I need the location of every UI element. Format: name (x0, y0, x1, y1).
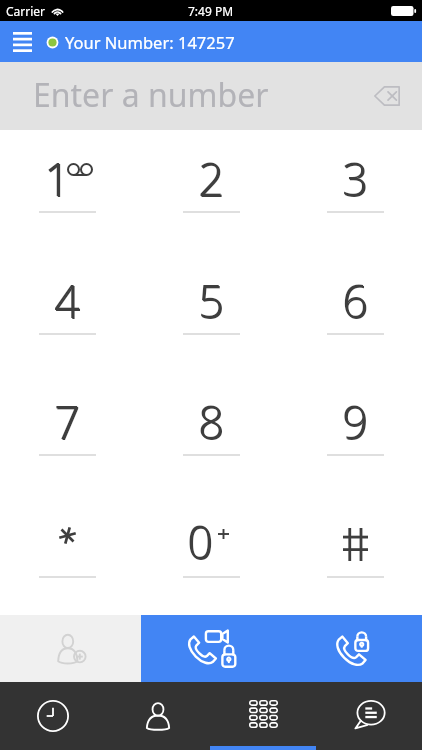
staticText: 6 (342, 270, 368, 331)
staticText: 5 (199, 271, 225, 332)
staticText: 7 (55, 392, 81, 453)
staticText: 8 (199, 392, 225, 453)
staticText: 8 (198, 391, 224, 452)
button[interactable]: 4 (7, 263, 127, 363)
staticText: Your Number: 147257 (65, 31, 235, 53)
staticText: 9 (343, 392, 369, 453)
button[interactable]: 3 (295, 141, 415, 241)
button[interactable] (7, 506, 127, 606)
button[interactable]: 9 (295, 384, 415, 484)
button[interactable]: 6 (295, 263, 415, 363)
button[interactable]: 8 (151, 384, 271, 484)
button[interactable]: Secure video call (141, 615, 281, 682)
button[interactable] (295, 506, 415, 606)
button[interactable]: Add contact (0, 615, 141, 682)
staticText: 6 (343, 271, 369, 332)
button[interactable]: Recent calls (0, 682, 105, 750)
button[interactable]: 5 (151, 263, 271, 363)
staticText: 2 (198, 148, 224, 209)
staticText: 7 (54, 391, 80, 452)
staticText: 9 (342, 391, 368, 452)
button[interactable]: Open navigation menu (4, 24, 40, 60)
button[interactable]: Messages (316, 682, 422, 750)
staticText: 0 (188, 512, 214, 573)
button[interactable]: Backspace (365, 74, 409, 118)
button[interactable]: Contacts (105, 682, 210, 750)
staticText: 5 (198, 270, 224, 331)
staticText: 0 (187, 511, 213, 572)
button[interactable]: Keypad (210, 682, 316, 750)
staticText: 3 (342, 148, 368, 209)
staticText: 3 (343, 149, 369, 210)
staticText: 4 (55, 271, 81, 332)
button[interactable]: 7 (7, 384, 127, 484)
button[interactable]: Secure call (281, 615, 422, 682)
button[interactable]: 2 (151, 141, 271, 241)
button[interactable]: 1 (7, 141, 127, 241)
staticText: 1 (44, 148, 70, 209)
staticText: 2 (199, 149, 225, 210)
staticText: 4 (54, 270, 80, 331)
staticText: Enter a number (33, 73, 269, 117)
staticText: 7:49 PM (188, 3, 234, 19)
button[interactable]: 0 (151, 506, 271, 606)
staticText: 1 (45, 149, 71, 210)
staticText: Carrier (6, 3, 46, 19)
